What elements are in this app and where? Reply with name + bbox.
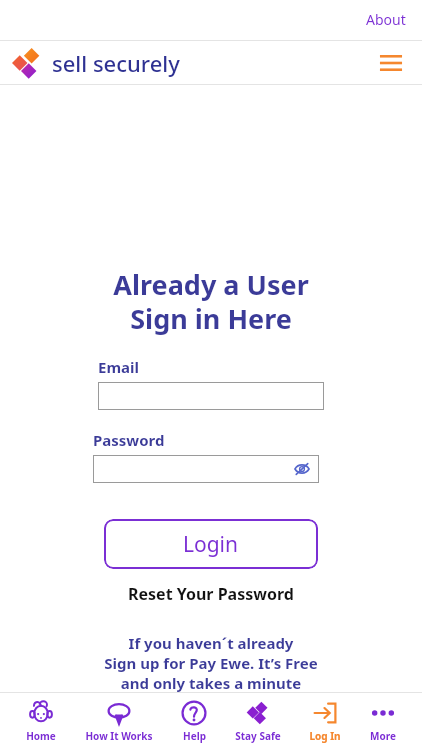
- button[interactable]: About: [362, 8, 410, 31]
- staticText: More: [370, 729, 396, 743]
- button[interactable]: Help: [179, 698, 209, 745]
- button[interactable]: Menu: [374, 46, 408, 80]
- staticText: Log In: [309, 729, 341, 743]
- button[interactable]: Show password: [292, 459, 312, 479]
- button[interactable]: Log In: [307, 698, 343, 745]
- staticText: Login: [183, 530, 239, 559]
- staticText: Email: [98, 357, 139, 377]
- button[interactable]: [98, 382, 324, 410]
- button[interactable]: Stay Safe: [233, 698, 283, 745]
- staticText: Reset Your Password: [128, 583, 294, 605]
- button[interactable]: Login: [104, 519, 318, 569]
- button[interactable]: How It Works: [83, 698, 155, 745]
- staticText: How It Works: [85, 729, 153, 743]
- staticText: Home: [26, 729, 56, 743]
- button[interactable]: Home: [24, 698, 58, 745]
- staticText: sell securely: [52, 48, 180, 78]
- button[interactable]: Show password: [93, 455, 319, 483]
- staticText: Help: [183, 729, 206, 743]
- staticText: Password: [93, 430, 165, 450]
- staticText: About: [366, 10, 406, 29]
- staticText: Already a User Sign in Here: [113, 266, 309, 337]
- button[interactable]: sell securely: [10, 45, 180, 81]
- staticText: If you haven´t already Sign up for Pay E…: [104, 633, 318, 693]
- button[interactable]: More: [368, 698, 398, 745]
- button[interactable]: Reset Your Password: [124, 579, 298, 609]
- staticText: Stay Safe: [235, 729, 281, 743]
